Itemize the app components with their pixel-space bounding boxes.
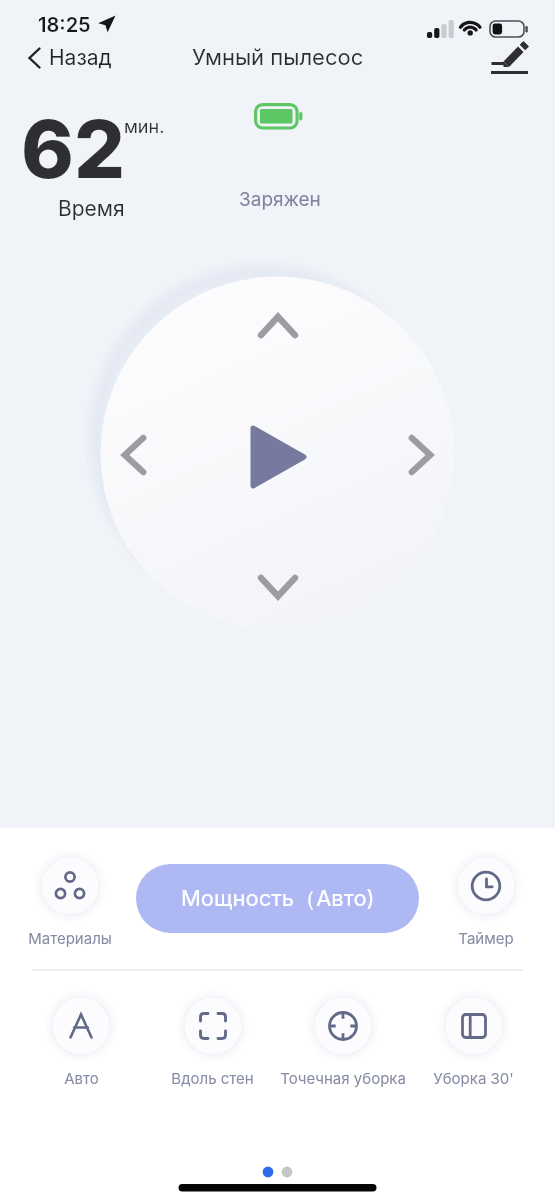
button[interactable]: Влево bbox=[106, 427, 162, 483]
staticText: 18:25 bbox=[38, 13, 91, 37]
button[interactable]: Мощность（Авто) bbox=[136, 864, 419, 933]
button[interactable]: Переименовать bbox=[486, 36, 536, 86]
staticText: Вдоль стен bbox=[171, 1069, 254, 1087]
staticText: Точечная уборка bbox=[280, 1069, 406, 1087]
button[interactable]: Вправо bbox=[393, 427, 449, 483]
staticText: Уборка 30' bbox=[433, 1069, 514, 1087]
button[interactable]: Точечная уборка bbox=[253, 989, 433, 1087]
staticText: Авто bbox=[64, 1069, 99, 1087]
button[interactable]: Назад bbox=[22, 41, 118, 74]
staticText: Заряжен bbox=[239, 188, 321, 211]
staticText: мин. bbox=[124, 116, 165, 138]
staticText: Материалы bbox=[28, 929, 112, 947]
button[interactable]: Таймер bbox=[396, 849, 555, 947]
staticText: Мощность（Авто) bbox=[181, 885, 375, 913]
staticText: Таймер bbox=[458, 929, 514, 947]
staticText: Умный пылесос bbox=[192, 44, 364, 71]
button[interactable]: Уборка 30' bbox=[383, 989, 555, 1087]
staticText: Назад bbox=[49, 45, 112, 70]
button[interactable]: Материалы bbox=[0, 849, 160, 947]
staticText: 62 bbox=[21, 100, 125, 197]
staticText: Время bbox=[58, 196, 125, 221]
button[interactable]: Вниз bbox=[250, 559, 306, 615]
button[interactable]: Авто bbox=[0, 989, 171, 1087]
button[interactable]: Вверх bbox=[250, 298, 306, 354]
button[interactable]: Старт bbox=[233, 414, 319, 500]
button[interactable]: Вдоль стен bbox=[122, 989, 302, 1087]
